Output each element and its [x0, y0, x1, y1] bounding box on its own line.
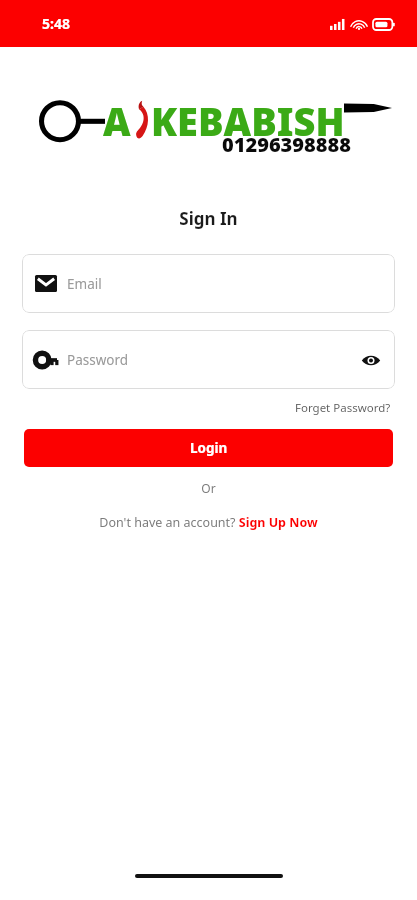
staticText: Don't have an account? Sign Up Now — [99, 514, 318, 531]
staticText: KEBABISH — [151, 95, 345, 147]
button[interactable]: Show password — [360, 349, 382, 371]
button[interactable]: Don't have an account? Sign Up Now — [97, 512, 320, 533]
staticText: 5:48 — [42, 14, 70, 33]
staticText: Sign In — [0, 207, 417, 230]
staticText: Forget Password? — [295, 400, 391, 416]
staticText: Login — [190, 439, 228, 457]
staticText: 01296398888 — [222, 131, 351, 158]
button[interactable]: Password — [22, 330, 395, 389]
button[interactable]: Forget Password? — [293, 398, 393, 418]
staticText: A — [103, 95, 131, 147]
staticText: Password — [67, 351, 360, 369]
staticText: Or — [0, 480, 417, 496]
button[interactable]: Login — [24, 429, 393, 467]
button[interactable]: Email — [22, 254, 395, 313]
other: Password — [35, 352, 57, 368]
staticText: Email — [67, 275, 382, 293]
